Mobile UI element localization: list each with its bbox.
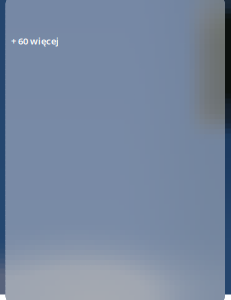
button[interactable]: + 60 więcej — [0, 0, 84, 10]
staticText: + 60 więcej — [11, 35, 59, 47]
